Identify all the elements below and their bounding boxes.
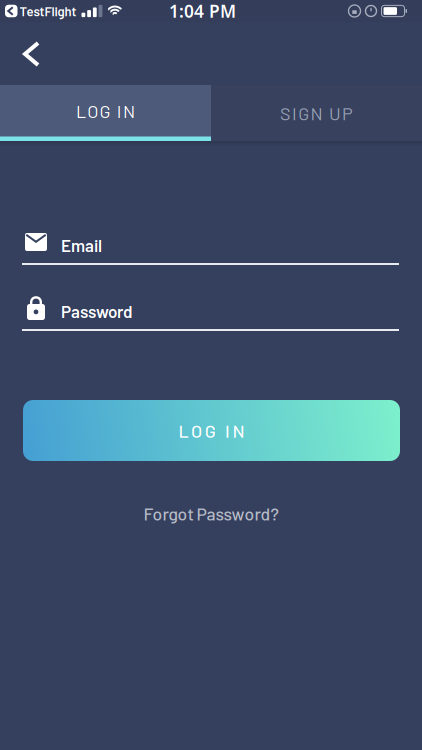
staticText: I (292, 102, 297, 124)
staticText: O (87, 100, 98, 122)
button[interactable]: Password (0, 296, 422, 342)
staticText: S (280, 102, 291, 124)
staticText: Forgot Password? (143, 503, 278, 524)
staticText: L (178, 420, 188, 441)
staticText: O (191, 420, 202, 441)
staticText: L (76, 100, 86, 122)
button[interactable]: L (0, 85, 211, 141)
staticText: N (232, 420, 244, 441)
button[interactable]: S (211, 85, 422, 141)
staticText: G (99, 100, 110, 122)
staticText: I (225, 420, 230, 441)
staticText: 1:04 PM (169, 0, 236, 22)
button[interactable]: Forgot Password? (143, 503, 278, 524)
staticText: G (205, 420, 216, 441)
staticText: N (310, 102, 322, 124)
staticText: Email (61, 235, 102, 255)
staticText: P (342, 102, 353, 124)
button[interactable]: Back (0, 0, 38, 65)
staticText: N (123, 100, 135, 122)
staticText: G (298, 102, 309, 124)
button[interactable]: Email (0, 233, 422, 279)
staticText: Password (61, 301, 133, 321)
staticText: TestFlight (19, 3, 76, 19)
staticText: U (329, 102, 341, 124)
staticText: I (117, 100, 122, 122)
button[interactable]: L (23, 400, 400, 461)
